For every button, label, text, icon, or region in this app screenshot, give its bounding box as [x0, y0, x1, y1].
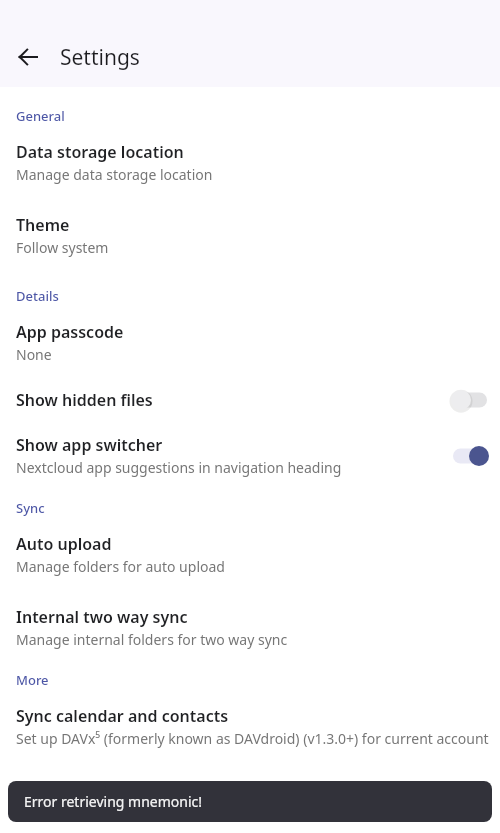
staticText: Auto upload — [16, 533, 112, 555]
staticText: Contacts and calendar backup — [16, 778, 252, 800]
button[interactable]: Data storage location — [0, 125, 500, 184]
staticText: Sync calendar and contacts — [16, 705, 229, 727]
staticText: More — [16, 671, 49, 689]
staticText: Back up contacts and calendar — [16, 802, 217, 821]
staticText: Data storage location — [16, 141, 184, 163]
staticText: Details — [16, 287, 59, 305]
staticText: Theme — [16, 214, 70, 236]
staticText: Manage folders for auto upload — [16, 557, 225, 576]
staticText: Sync — [16, 499, 45, 517]
staticText: Show hidden files — [16, 389, 153, 411]
staticText: Settings — [60, 43, 140, 72]
button[interactable]: Sync calendar and contacts — [0, 689, 500, 748]
staticText: None — [16, 345, 52, 364]
staticText: Error retrieving mnemonic! — [24, 792, 202, 811]
button[interactable]: Show hidden files — [0, 364, 500, 414]
button[interactable]: Back — [12, 41, 44, 73]
button[interactable]: Auto upload — [0, 517, 500, 576]
staticText: Nextcloud app suggestions in navigation … — [16, 458, 342, 477]
staticText: Set up DAVx⁵ (formerly known as DAVdroid… — [16, 729, 489, 748]
staticText: General — [16, 107, 65, 125]
staticText: App passcode — [16, 321, 124, 343]
staticText: Show app switcher — [16, 434, 163, 456]
button[interactable]: App passcode — [0, 305, 500, 364]
button[interactable]: Theme — [0, 184, 500, 257]
button[interactable]: Show app switcher — [0, 414, 500, 477]
staticText: Manage internal folders for two way sync — [16, 630, 288, 649]
staticText: Manage data storage location — [16, 165, 213, 184]
staticText: Follow system — [16, 238, 109, 257]
button[interactable]: Contacts and calendar backup — [0, 748, 500, 821]
button[interactable]: Internal two way sync — [0, 576, 500, 649]
button[interactable]: Error retrieving mnemonic! — [8, 781, 492, 822]
staticText: Internal two way sync — [16, 606, 188, 628]
